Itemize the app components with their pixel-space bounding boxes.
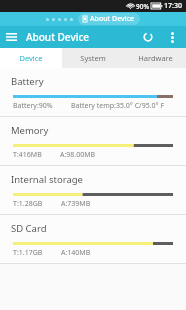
staticText: About Device bbox=[90, 14, 135, 24]
staticText: System bbox=[80, 53, 106, 63]
button[interactable]: Open navigation drawer bbox=[0, 26, 22, 48]
staticText: A:98.00MB bbox=[60, 150, 96, 160]
button[interactable]: Refresh bbox=[137, 26, 159, 48]
staticText: SD Card bbox=[11, 222, 47, 235]
staticText: T:1.28GB bbox=[13, 199, 43, 209]
staticText: Internal storage bbox=[11, 173, 83, 186]
staticText: Battery temp:35.0° C/95.0° F bbox=[71, 101, 165, 111]
staticText: Memory bbox=[11, 124, 49, 137]
staticText: A:140MB bbox=[61, 248, 91, 258]
button[interactable]: System bbox=[62, 48, 124, 68]
staticText: Device bbox=[19, 53, 43, 63]
staticText: Battery bbox=[11, 75, 44, 88]
button[interactable]: More options bbox=[162, 27, 182, 47]
staticText: 17:30 bbox=[164, 1, 182, 11]
button[interactable]: About Device bbox=[78, 13, 140, 25]
staticText: Hardware bbox=[138, 53, 173, 63]
button[interactable]: Device bbox=[0, 48, 62, 68]
staticText: T:1.17GB bbox=[13, 248, 43, 258]
staticText: T:416MB bbox=[13, 150, 42, 160]
staticText: Battery:90% bbox=[13, 101, 53, 111]
staticText: A:739MB bbox=[61, 199, 91, 209]
button[interactable]: Hardware bbox=[124, 48, 186, 68]
staticText: 90% bbox=[136, 2, 149, 11]
staticText: About Device bbox=[26, 30, 90, 44]
